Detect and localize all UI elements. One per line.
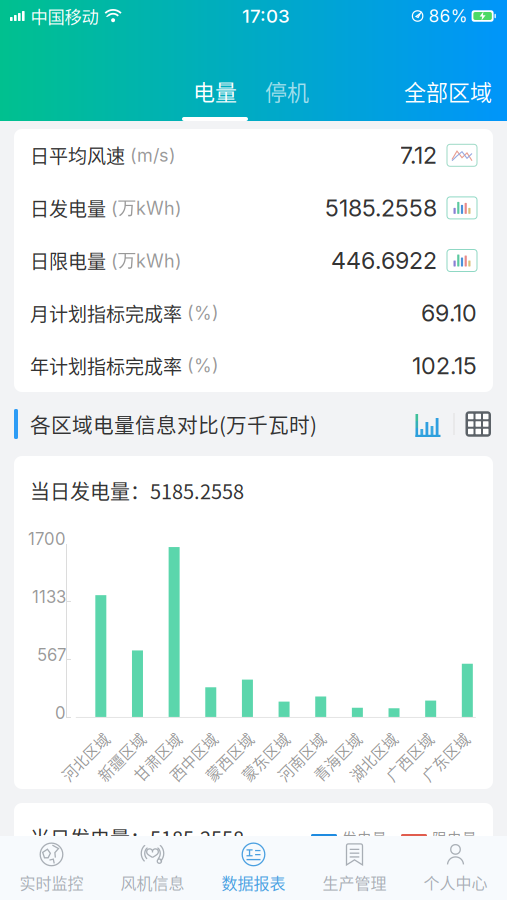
button[interactable]: 数据报表 — [203, 836, 304, 900]
staticText: 河南区域 — [267, 735, 327, 756]
button[interactable]: 风机信息 — [102, 836, 203, 900]
staticText: 广西区域 — [375, 735, 435, 756]
staticText: 7.12 — [400, 141, 437, 169]
staticText: 风机信息 — [120, 871, 184, 894]
staticText: 蒙西区域 — [195, 735, 255, 756]
staticText: 日平均风速 — [30, 141, 125, 169]
staticText: 限电量 — [432, 827, 477, 848]
staticText: 0 — [55, 703, 66, 723]
staticText: 当日发电量：5185.2558 — [30, 476, 244, 505]
staticText: (%) — [182, 355, 219, 377]
staticText: 湖北区域 — [339, 735, 399, 756]
staticText: 1700 — [28, 529, 66, 549]
staticText: 86% — [429, 5, 468, 26]
staticText: 当日发电量：5185.2558 — [30, 823, 244, 852]
staticText: 生产管理 — [322, 871, 386, 894]
staticText: 甘肃区域 — [123, 735, 183, 756]
staticText: 电量 — [193, 75, 237, 107]
staticText: 发电量 — [342, 827, 387, 848]
staticText: 青海区域 — [303, 735, 363, 756]
staticText: 5185.2558 — [325, 194, 437, 222]
button[interactable]: 生产管理 — [304, 836, 405, 900]
staticText: 停机 — [265, 75, 309, 107]
button[interactable]: Chart view — [415, 411, 442, 437]
staticText: 各区域电量信息对比(万千瓦时) — [30, 409, 317, 439]
staticText: 全部区域 — [404, 75, 492, 107]
button[interactable]: 电量 — [182, 65, 248, 121]
staticText: 中国移动 — [31, 3, 99, 29]
staticText: (万kWh) — [106, 197, 182, 219]
staticText: 新疆区域 — [87, 735, 147, 756]
staticText: 蒙东区域 — [231, 735, 291, 756]
staticText: 河北区域 — [51, 735, 111, 756]
button[interactable]: 停机 — [248, 65, 326, 121]
staticText: 567 — [37, 645, 66, 665]
staticText: (m/s) — [125, 144, 176, 166]
staticText: 数据报表 — [221, 871, 285, 894]
staticText: 1133 — [32, 587, 66, 607]
staticText: (万kWh) — [106, 249, 182, 272]
staticText: 实时监控 — [19, 871, 83, 894]
staticText: 个人中心 — [423, 871, 487, 894]
staticText: 17:03 — [242, 5, 290, 27]
button[interactable]: 实时监控 — [1, 836, 102, 900]
staticText: 西中区域 — [159, 735, 219, 756]
button[interactable]: 全部区域 — [403, 65, 493, 121]
button[interactable]: 个人中心 — [405, 836, 506, 900]
staticText: 月计划指标完成率 — [30, 299, 182, 327]
staticText: 446.6922 — [331, 246, 437, 275]
staticText: 广东区域 — [411, 735, 471, 756]
staticText: 年计划指标完成率 — [30, 352, 182, 379]
staticText: 日发电量 — [30, 194, 106, 222]
staticText: 69.10 — [421, 299, 477, 327]
button[interactable]: Table view — [465, 411, 491, 437]
staticText: 102.15 — [412, 352, 477, 380]
staticText: (%) — [182, 302, 219, 324]
staticText: 日限电量 — [30, 247, 106, 274]
